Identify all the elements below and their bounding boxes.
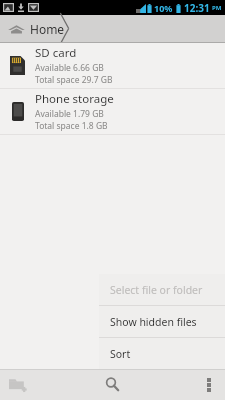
staticText: Total space 1.8 GB [35,120,108,132]
staticText: Available 6.66 GB [35,62,104,74]
staticText: Show hidden files [110,315,197,329]
button[interactable]: Show hidden files [99,306,225,337]
button[interactable]: Search [75,369,150,400]
button[interactable]: SD card [0,43,225,88]
staticText: 12:31 [184,1,210,15]
staticText: PM [212,4,222,12]
staticText: Available 1.79 GB [35,108,104,120]
button[interactable]: New folder [0,369,75,400]
staticText: Sort [110,347,131,361]
button[interactable]: More options [150,369,225,400]
staticText: SD card [35,45,77,61]
staticText: Home [30,21,65,37]
button[interactable]: Select file or folder [99,274,225,305]
staticText: Phone storage [35,91,114,107]
staticText: 10% [154,2,173,14]
button[interactable]: Home [0,15,70,42]
staticText: Total space 29.7 GB [35,74,113,86]
staticText: Select file or folder [110,283,203,297]
button[interactable]: Sort [99,338,225,369]
button[interactable]: Phone storage [0,89,225,134]
